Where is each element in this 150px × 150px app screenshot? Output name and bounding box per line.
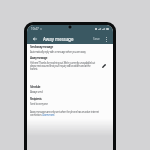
button[interactable]: Edit message: [100, 62, 107, 69]
button[interactable]: Recipients: [27, 96, 113, 107]
button[interactable]: Save: [92, 36, 101, 42]
staticText: Away message: [43, 36, 74, 42]
staticText: Send to everyone: [30, 102, 48, 106]
staticText: Automatically reply with a message when …: [30, 50, 86, 54]
staticText: Away message: [30, 56, 48, 60]
staticText: Schedule: [30, 85, 41, 89]
button[interactable]: Schedule: [27, 84, 113, 95]
staticText: Send away message: [30, 45, 53, 49]
button[interactable]: Back: [31, 35, 39, 43]
staticText: Hi there! Thanks for reaching out. We're…: [30, 61, 98, 70]
staticText: Recipients: [30, 97, 42, 101]
button[interactable]: Send away message: [27, 44, 113, 55]
staticText: 10:47: [31, 27, 39, 31]
staticText: Away messages are only sent when the pho…: [30, 110, 110, 116]
button[interactable]: More options: [103, 36, 109, 42]
staticText: Save: [93, 37, 100, 41]
staticText: Always send: [30, 90, 43, 94]
button[interactable]: Away message: [27, 56, 113, 70]
